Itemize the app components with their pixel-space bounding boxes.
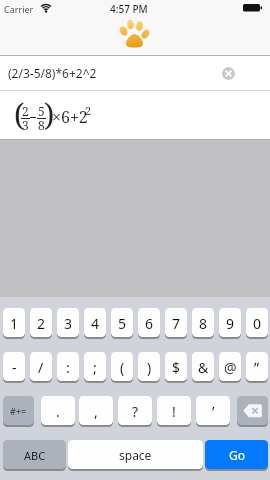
button[interactable]: : (57, 352, 79, 382)
staticText: 4 (91, 314, 100, 333)
staticText: ; (93, 358, 97, 377)
staticText: 2 (22, 103, 29, 119)
button[interactable]: ” (246, 352, 268, 382)
button[interactable]: @ (219, 352, 241, 382)
button[interactable]: ! (157, 396, 191, 426)
button[interactable]: 8 (192, 308, 214, 338)
staticText: ABC (24, 448, 46, 463)
button[interactable]: , (79, 396, 113, 426)
button[interactable] (114, 18, 156, 52)
staticText: 3 (22, 117, 29, 133)
staticText: 2 (37, 314, 46, 333)
staticText: ( (120, 358, 125, 377)
staticText: ( (14, 94, 25, 135)
staticText: (2/3-5/8)*6+2^2 (8, 65, 97, 81)
button[interactable]: 6 (138, 308, 160, 338)
staticText: ) (147, 358, 152, 377)
staticText: / (38, 358, 44, 377)
staticText: - (12, 358, 17, 377)
button[interactable] (237, 396, 268, 426)
staticText: 5 (38, 103, 45, 119)
button[interactable]: (2/3-5/8)*6+2^2 (0, 56, 270, 90)
staticText: 7 (172, 314, 181, 333)
staticText: #+= (10, 405, 27, 417)
staticText: Go (229, 447, 245, 463)
staticText: 1 (10, 314, 19, 333)
button[interactable]: $ (165, 352, 187, 382)
staticText: 3 (64, 314, 73, 333)
button[interactable]: 2 (30, 308, 52, 338)
button[interactable]: 5 (111, 308, 133, 338)
staticText: . (56, 402, 60, 421)
button[interactable]: ) (138, 352, 160, 382)
staticText: space (119, 447, 152, 463)
staticText: ×6+2 (52, 106, 88, 128)
button[interactable]: ’ (196, 396, 230, 426)
staticText: ’ (212, 402, 215, 421)
button[interactable]: 3 (57, 308, 79, 338)
staticText: & (198, 358, 209, 377)
staticText: ) (44, 94, 55, 135)
button[interactable] (222, 67, 235, 80)
staticText: 5 (118, 314, 127, 333)
button[interactable]: & (192, 352, 214, 382)
button[interactable]: ; (84, 352, 106, 382)
staticText: 2 (85, 103, 92, 118)
button[interactable]: 1 (3, 308, 25, 338)
button[interactable]: #+= (3, 396, 34, 426)
staticText: 4:57 PM (110, 2, 148, 16)
staticText: , (94, 402, 98, 421)
staticText: @ (224, 358, 237, 377)
button[interactable]: Go (205, 440, 268, 470)
button[interactable]: space (68, 440, 203, 470)
staticText: ” (254, 358, 260, 377)
staticText: : (66, 358, 70, 377)
staticText: 9 (226, 314, 235, 333)
staticText: 6 (145, 314, 154, 333)
staticText: 8 (199, 314, 208, 333)
button[interactable]: 9 (219, 308, 241, 338)
button[interactable]: ( (111, 352, 133, 382)
button[interactable]: 7 (165, 308, 187, 338)
button[interactable]: / (30, 352, 52, 382)
staticText: Carrier (4, 3, 34, 15)
button[interactable]: ? (118, 396, 152, 426)
staticText: ? (132, 402, 139, 421)
button[interactable]: ABC (3, 440, 66, 470)
staticText: 0 (253, 314, 262, 333)
staticText: $ (172, 358, 181, 377)
button[interactable]: . (41, 396, 75, 426)
button[interactable]: 0 (246, 308, 268, 338)
button[interactable]: 4 (84, 308, 106, 338)
button[interactable]: - (3, 352, 25, 382)
staticText: 8 (38, 117, 45, 133)
staticText: ! (172, 402, 176, 421)
